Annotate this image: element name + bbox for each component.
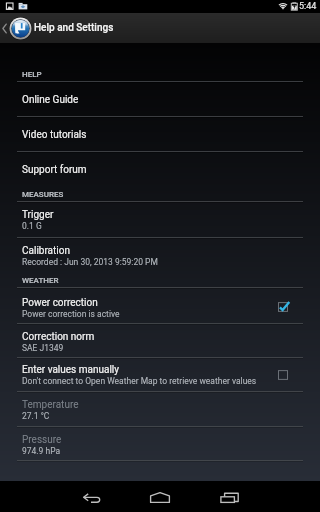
- staticText: 5:44: [299, 1, 317, 12]
- button[interactable]: Recent apps: [195, 481, 263, 512]
- staticText: Pressure: [22, 434, 62, 446]
- button[interactable]: Temperature: [0, 392, 320, 427]
- staticText: Recorded : Jun 30, 2013 9:59:20 PM: [22, 257, 158, 267]
- staticText: MEASURES: [22, 190, 64, 199]
- button[interactable]: Back: [58, 481, 126, 512]
- button[interactable]: Video tutorials: [0, 117, 320, 152]
- button[interactable]: Correction norm: [0, 324, 320, 359]
- staticText: Power correction: [22, 297, 98, 309]
- staticText: Online Guide: [22, 94, 79, 106]
- staticText: Help and Settings: [34, 22, 114, 34]
- button[interactable]: Navigate up: [0, 13, 36, 43]
- staticText: Trigger: [22, 209, 54, 221]
- staticText: WEATHER: [22, 276, 59, 285]
- staticText: Calibration: [22, 245, 70, 257]
- staticText: Enter values manually: [22, 364, 120, 376]
- staticText: Don't connect to Open Weather Map to ret…: [22, 376, 257, 386]
- staticText: Power correction is active: [22, 309, 120, 319]
- staticText: 0.1 G: [22, 221, 42, 231]
- button[interactable]: Trigger: [0, 202, 320, 238]
- button[interactable]: Support forum: [0, 152, 320, 187]
- staticText: HELP: [22, 70, 42, 79]
- staticText: Correction norm: [22, 331, 95, 343]
- staticText: Temperature: [22, 399, 79, 411]
- staticText: Support forum: [22, 164, 87, 176]
- button[interactable]: Enter values manually: [0, 358, 320, 392]
- button[interactable]: Home: [126, 481, 194, 512]
- staticText: Video tutorials: [22, 129, 87, 141]
- button[interactable]: Online Guide: [0, 82, 320, 117]
- staticText: 27.1 °C: [22, 411, 50, 421]
- button[interactable]: Pressure: [0, 427, 320, 462]
- staticText: SAE J1349: [22, 343, 64, 353]
- button[interactable]: Calibration: [0, 238, 320, 273]
- button[interactable]: Power correction: [0, 288, 320, 323]
- staticText: 974.9 hPa: [22, 446, 61, 456]
